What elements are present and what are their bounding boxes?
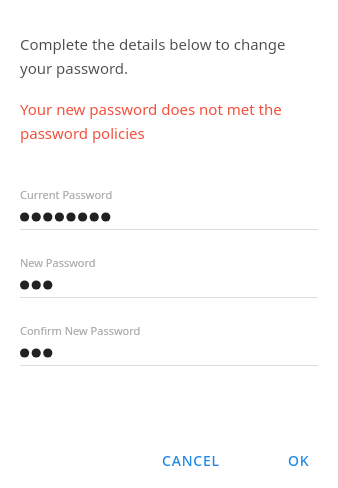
staticText: Your new password does not met the passw… xyxy=(20,99,288,143)
button[interactable]: OK xyxy=(276,443,322,478)
staticText: OK xyxy=(288,451,310,470)
staticText: New Password xyxy=(20,255,96,270)
staticText: CANCEL xyxy=(162,451,220,470)
staticText: Confirm New Password xyxy=(20,323,141,338)
button[interactable]: CANCEL xyxy=(150,443,232,478)
staticText: Complete the details below to change you… xyxy=(20,34,318,78)
staticText: Current Password xyxy=(20,187,113,202)
